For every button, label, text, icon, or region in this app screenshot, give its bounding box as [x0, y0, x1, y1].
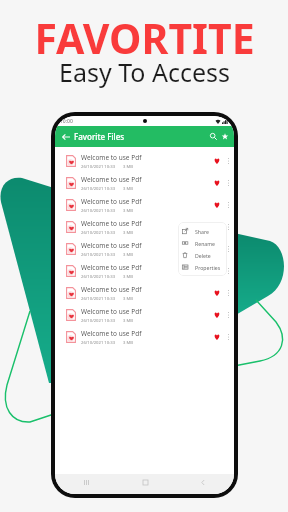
staticText: 26/10/2021 10:33	[81, 208, 116, 214]
button[interactable]: More options	[224, 173, 233, 193]
staticText: Welcome to use Pdf	[81, 241, 142, 250]
staticText: 3 MB	[123, 340, 134, 346]
button[interactable]: Welcome to use Pdf	[55, 282, 234, 304]
button[interactable]: More options	[224, 217, 233, 237]
button[interactable]: Welcome to use Pdf	[55, 150, 234, 172]
staticText: Welcome to use Pdf	[81, 307, 142, 316]
staticText: 26/10/2021 10:33	[81, 186, 116, 192]
button[interactable]: Search	[208, 131, 219, 142]
button[interactable]: Welcome to use Pdf	[55, 194, 234, 216]
staticText: 26/10/2021 10:33	[81, 340, 116, 346]
staticText: Welcome to use Pdf	[81, 197, 142, 206]
button[interactable]: Share	[178, 225, 227, 237]
button[interactable]: Recents	[79, 475, 93, 489]
staticText: Welcome to use Pdf	[81, 329, 142, 338]
button[interactable]: Welcome to use Pdf	[55, 326, 234, 348]
staticText: 3 MB	[123, 252, 134, 258]
staticText: Properties	[195, 264, 221, 271]
button[interactable]: More options	[224, 195, 233, 215]
staticText: Welcome to use Pdf	[81, 219, 142, 228]
staticText: 3 MB	[123, 296, 134, 302]
button[interactable]: More options	[224, 283, 233, 303]
staticText: Delete	[195, 252, 211, 259]
button[interactable]: Favorite	[210, 327, 223, 347]
staticText: 26/10/2021 10:33	[81, 274, 116, 280]
button[interactable]: Delete	[178, 249, 227, 261]
staticText: 3 MB	[123, 274, 134, 280]
staticText: Rename	[195, 240, 216, 247]
button[interactable]: More options	[224, 151, 233, 171]
staticText: Welcome to use Pdf	[81, 153, 142, 162]
button[interactable]: Home	[138, 475, 152, 489]
button[interactable]: More options	[224, 239, 233, 259]
button[interactable]: Favorite	[210, 217, 223, 237]
staticText: 10:00	[60, 118, 73, 125]
staticText: Easy To Access	[59, 55, 230, 89]
button[interactable]: Favorite	[210, 151, 223, 171]
button[interactable]: Welcome to use Pdf	[55, 216, 234, 238]
button[interactable]: Welcome to use Pdf	[55, 172, 234, 194]
button[interactable]: Welcome to use Pdf	[55, 238, 234, 260]
button[interactable]: Welcome to use Pdf	[55, 260, 234, 282]
staticText: 26/10/2021 10:33	[81, 164, 116, 170]
staticText: Welcome to use Pdf	[81, 285, 142, 294]
staticText: Welcome to use Pdf	[81, 175, 142, 184]
button[interactable]: Favorite	[210, 239, 223, 259]
button[interactable]: Welcome to use Pdf	[55, 304, 234, 326]
staticText: 3 MB	[123, 230, 134, 236]
staticText: 26/10/2021 10:33	[81, 252, 116, 258]
staticText: 3 MB	[123, 318, 134, 324]
button[interactable]: Favorite	[210, 173, 223, 193]
button[interactable]: More options	[224, 261, 233, 281]
staticText: 26/10/2021 10:33	[81, 230, 116, 236]
staticText: FAVORTITE	[34, 10, 255, 66]
button[interactable]: More options	[224, 305, 233, 325]
button[interactable]: Favorite	[210, 283, 223, 303]
staticText: 3 MB	[123, 208, 134, 214]
button[interactable]: Back	[196, 475, 210, 489]
button[interactable]: Favorite	[210, 195, 223, 215]
staticText: Welcome to use Pdf	[81, 263, 142, 272]
staticText: 3 MB	[123, 164, 134, 170]
staticText: 26/10/2021 10:33	[81, 318, 116, 324]
staticText: 26/10/2021 10:33	[81, 296, 116, 302]
button[interactable]: Favorites	[219, 131, 230, 142]
button[interactable]: Favorite	[210, 261, 223, 281]
button[interactable]: Back	[60, 131, 72, 143]
staticText: Share	[195, 228, 209, 235]
button[interactable]: Rename	[178, 237, 227, 249]
button[interactable]: Properties	[178, 261, 227, 273]
button[interactable]: More options	[224, 327, 233, 347]
staticText: 3 MB	[123, 186, 134, 192]
staticText: Favorite Files	[74, 131, 125, 142]
button[interactable]: Favorite	[210, 305, 223, 325]
